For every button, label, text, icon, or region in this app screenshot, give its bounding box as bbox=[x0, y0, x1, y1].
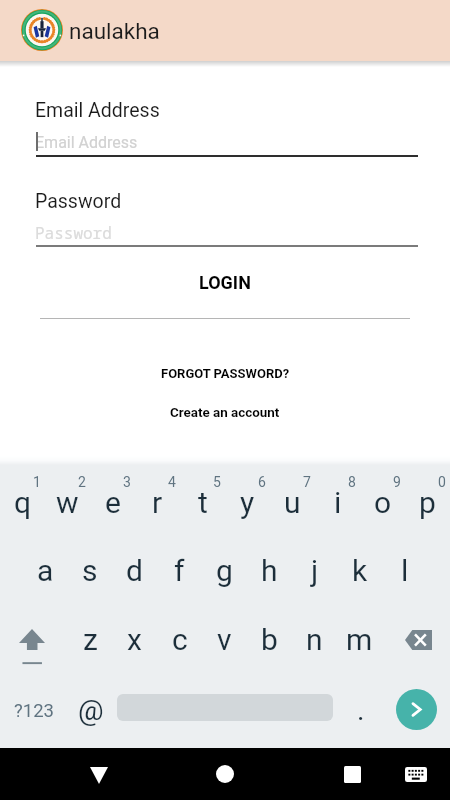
staticText: 8 bbox=[348, 474, 356, 490]
button[interactable]: 5 bbox=[180, 465, 225, 534]
staticText: u bbox=[284, 485, 301, 520]
button[interactable]: n bbox=[292, 603, 337, 672]
button[interactable]: 0 bbox=[405, 465, 450, 534]
staticText: c bbox=[172, 622, 188, 657]
button[interactable]: @ bbox=[68, 672, 113, 748]
button[interactable]: ?123 bbox=[0, 672, 68, 748]
staticText: j bbox=[311, 553, 319, 588]
button[interactable]: 2 bbox=[45, 465, 90, 534]
button[interactable]: d bbox=[112, 534, 157, 603]
button[interactable]: 9 bbox=[360, 465, 405, 534]
staticText: z bbox=[83, 622, 98, 657]
button[interactable]: Backspace bbox=[382, 603, 450, 672]
staticText: FORGOT PASSWORD? bbox=[161, 366, 290, 381]
staticText: r bbox=[152, 485, 163, 520]
button[interactable]: g bbox=[202, 534, 247, 603]
staticText: l bbox=[401, 553, 409, 588]
button[interactable]: f bbox=[157, 534, 202, 603]
button[interactable]: k bbox=[337, 534, 382, 603]
staticText: Email Address bbox=[35, 133, 138, 152]
button[interactable]: FORGOT PASSWORD? bbox=[0, 358, 450, 388]
staticText: 1 bbox=[33, 474, 41, 490]
button[interactable]: Recents bbox=[313, 748, 391, 800]
staticText: m bbox=[346, 622, 373, 657]
button[interactable]: Home bbox=[186, 748, 264, 800]
button[interactable]: . bbox=[336, 672, 386, 748]
staticText: 3 bbox=[123, 474, 131, 490]
staticText: LOGIN bbox=[199, 272, 251, 293]
staticText: y bbox=[240, 485, 255, 520]
button[interactable]: Create an account bbox=[0, 398, 450, 428]
button[interactable]: 8 bbox=[315, 465, 360, 534]
button[interactable]: z bbox=[68, 603, 112, 672]
staticText: 5 bbox=[213, 474, 221, 490]
staticText: Email Address bbox=[35, 99, 160, 122]
button[interactable]: 3 bbox=[90, 465, 135, 534]
button[interactable]: Enter bbox=[386, 672, 450, 748]
staticText: naulakha bbox=[69, 18, 160, 44]
button[interactable]: 6 bbox=[225, 465, 270, 534]
button[interactable]: h bbox=[247, 534, 292, 603]
button[interactable]: Keyboard bbox=[383, 748, 449, 800]
staticText: k bbox=[352, 553, 368, 588]
staticText: q bbox=[14, 485, 32, 520]
staticText: v bbox=[217, 622, 232, 657]
staticText: a bbox=[37, 553, 54, 588]
staticText: d bbox=[126, 553, 143, 588]
staticText: b bbox=[261, 622, 278, 657]
staticText: f bbox=[174, 553, 185, 588]
staticText: ?123 bbox=[14, 700, 54, 722]
staticText: h bbox=[261, 553, 278, 588]
staticText: 7 bbox=[303, 474, 311, 490]
staticText: @ bbox=[78, 694, 104, 727]
staticText: n bbox=[306, 622, 323, 657]
button[interactable]: j bbox=[292, 534, 337, 603]
button[interactable]: Back bbox=[60, 748, 138, 800]
staticText: e bbox=[105, 485, 121, 520]
staticText: w bbox=[56, 485, 79, 520]
button[interactable]: c bbox=[157, 603, 202, 672]
button[interactable]: s bbox=[67, 534, 112, 603]
staticText: Password bbox=[35, 190, 122, 213]
button[interactable]: l bbox=[382, 534, 427, 603]
button[interactable]: b bbox=[247, 603, 292, 672]
button[interactable]: 1 bbox=[0, 465, 45, 534]
button[interactable]: LOGIN bbox=[0, 265, 450, 299]
button[interactable]: v bbox=[202, 603, 247, 672]
staticText: i bbox=[334, 485, 342, 520]
button[interactable]: 7 bbox=[270, 465, 315, 534]
staticText: t bbox=[198, 485, 208, 520]
staticText: o bbox=[374, 485, 392, 520]
staticText: 0 bbox=[438, 474, 446, 490]
button[interactable]: 4 bbox=[135, 465, 180, 534]
staticText: Create an account bbox=[170, 405, 280, 421]
staticText: 4 bbox=[168, 474, 176, 490]
staticText: g bbox=[216, 553, 233, 588]
staticText: 6 bbox=[258, 474, 266, 490]
staticText: 2 bbox=[78, 474, 86, 490]
staticText: x bbox=[127, 622, 142, 657]
button[interactable]: Shift bbox=[0, 603, 68, 672]
button[interactable]: m bbox=[337, 603, 382, 672]
staticText: . bbox=[357, 694, 365, 727]
button[interactable]: x bbox=[112, 603, 157, 672]
button[interactable]: a bbox=[23, 534, 67, 603]
staticText: Password bbox=[35, 222, 112, 244]
staticText: p bbox=[419, 485, 436, 520]
staticText: s bbox=[82, 553, 98, 588]
staticText: 9 bbox=[393, 474, 401, 490]
